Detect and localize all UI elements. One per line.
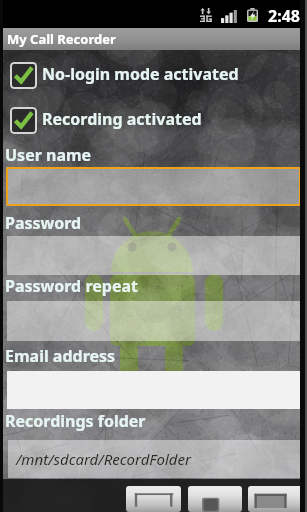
- button[interactable]: Recording activated: [10, 107, 202, 134]
- staticText: My Call Recorder: [7, 30, 116, 48]
- button[interactable]: Save settings: [126, 486, 181, 512]
- staticText: Email address: [5, 345, 116, 367]
- staticText: Password repeat: [5, 275, 138, 297]
- button[interactable]: Exit: [248, 486, 303, 512]
- other: Battery charging: [247, 8, 258, 22]
- staticText: 2:48: [268, 5, 300, 27]
- button[interactable]: [6, 167, 301, 206]
- other: Signal strength: [221, 10, 237, 23]
- button[interactable]: [7, 236, 300, 275]
- staticText: /mnt/sdcard/RecordFolder: [16, 449, 191, 469]
- button[interactable]: /mnt/sdcard/RecordFolder: [8, 440, 300, 478]
- staticText: No-login mode activated: [42, 63, 239, 85]
- staticText: User name: [5, 144, 92, 166]
- button[interactable]: [7, 301, 300, 341]
- staticText: Recording activated: [42, 108, 202, 130]
- staticText: Recordings folder: [5, 410, 146, 432]
- button[interactable]: No-login mode activated: [10, 62, 239, 89]
- staticText: Password: [5, 212, 82, 234]
- other: 3G mobile data: [200, 8, 212, 22]
- button[interactable]: Browse folder: [188, 486, 242, 512]
